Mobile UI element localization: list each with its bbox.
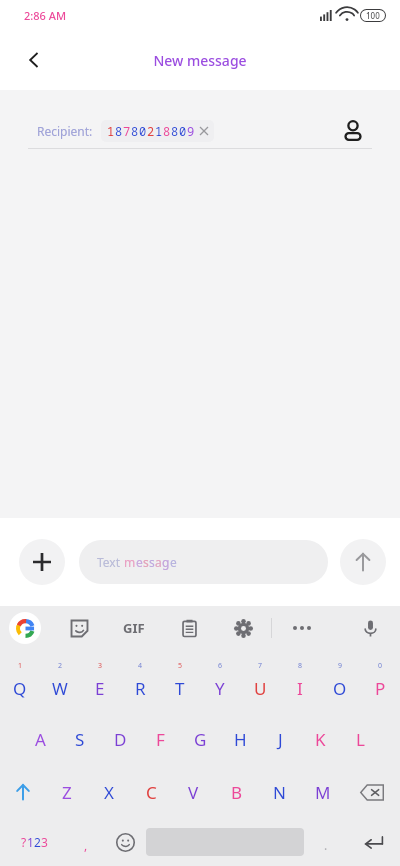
button[interactable]: Z xyxy=(46,766,88,818)
staticText: Q xyxy=(13,677,27,700)
button[interactable]: S xyxy=(60,712,100,766)
button[interactable]: , xyxy=(68,818,104,866)
staticText: F xyxy=(156,728,165,751)
button[interactable]: 1 xyxy=(101,120,214,142)
staticText: R xyxy=(135,677,146,700)
staticText: , xyxy=(84,837,88,853)
staticText: 0 xyxy=(139,123,147,139)
button[interactable]: 9 xyxy=(320,658,360,712)
button[interactable]: Stickers xyxy=(63,612,95,644)
staticText: I xyxy=(297,677,303,700)
staticText: 8 xyxy=(115,123,123,139)
button[interactable]: G xyxy=(180,712,220,766)
button[interactable]: Settings xyxy=(227,612,259,644)
button[interactable]: 0 xyxy=(360,658,400,712)
button[interactable]: L xyxy=(340,712,380,766)
staticText: 0 xyxy=(179,123,187,139)
staticText: s xyxy=(143,554,149,570)
staticText: 9 xyxy=(187,123,195,139)
button[interactable]: Back xyxy=(12,38,56,82)
button[interactable]: 1 xyxy=(0,658,40,712)
button[interactable]: Voice input xyxy=(354,612,386,644)
staticText: D xyxy=(114,728,127,751)
staticText: 6 xyxy=(218,661,223,671)
staticText: O xyxy=(333,677,347,700)
staticText: 8 xyxy=(298,661,303,671)
staticText: 5 xyxy=(178,661,183,671)
staticText: H xyxy=(234,728,247,751)
button[interactable]: Send xyxy=(340,539,386,585)
staticText: G xyxy=(194,728,207,751)
button[interactable]: J xyxy=(260,712,300,766)
button[interactable]: Shift xyxy=(0,766,46,818)
button[interactable]: V xyxy=(172,766,215,818)
staticText: a xyxy=(155,554,162,570)
staticText: 100 xyxy=(366,10,380,21)
button[interactable]: 3 xyxy=(80,658,120,712)
staticText: e xyxy=(136,554,143,570)
button[interactable]: H xyxy=(220,712,260,766)
button[interactable]: A xyxy=(20,712,60,766)
button[interactable]: 7 xyxy=(240,658,280,712)
staticText: 8 xyxy=(131,123,139,139)
button[interactable]: Choose contact xyxy=(334,112,372,150)
staticText: 3 xyxy=(41,834,48,850)
staticText: Y xyxy=(215,677,225,700)
button[interactable]: Text xyxy=(79,540,328,584)
staticText: 2:86 AM xyxy=(24,8,67,23)
button[interactable]: N xyxy=(258,766,301,818)
staticText: 7 xyxy=(258,661,263,671)
button[interactable]: 2 xyxy=(40,658,80,712)
button[interactable]: 5 xyxy=(160,658,200,712)
button[interactable]: M xyxy=(301,766,344,818)
staticText: U xyxy=(254,677,267,700)
staticText: 1 xyxy=(107,123,115,139)
staticText: . xyxy=(324,837,328,853)
button[interactable]: More options xyxy=(286,612,318,644)
staticText: s xyxy=(149,554,155,570)
staticText: e xyxy=(170,554,177,570)
staticText: 1 xyxy=(27,834,34,850)
button[interactable]: GIF xyxy=(117,611,151,645)
button[interactable]: B xyxy=(215,766,258,818)
staticText: Recipient: xyxy=(37,123,93,139)
staticText: 2 xyxy=(147,123,155,139)
button[interactable]: 6 xyxy=(200,658,240,712)
button[interactable]: F xyxy=(140,712,180,766)
staticText: Z xyxy=(62,781,72,804)
button[interactable]: 4 xyxy=(120,658,160,712)
staticText: 2 xyxy=(34,834,41,850)
button[interactable]: K xyxy=(300,712,340,766)
staticText: 9 xyxy=(338,661,343,671)
staticText: A xyxy=(35,728,46,751)
button[interactable]: Enter xyxy=(348,818,400,866)
staticText: J xyxy=(278,728,283,751)
staticText: ? xyxy=(21,834,27,850)
staticText: 7 xyxy=(123,123,131,139)
staticText: Text xyxy=(97,554,124,570)
button[interactable]: X xyxy=(88,766,130,818)
staticText: 1 xyxy=(155,123,163,139)
button[interactable]: ? xyxy=(0,818,68,866)
button[interactable]: Clipboard xyxy=(173,612,205,644)
button[interactable]: Add attachment xyxy=(19,539,65,585)
button[interactable]: Emoji xyxy=(104,818,146,866)
button[interactable]: Backspace xyxy=(344,766,400,818)
staticText: New message xyxy=(153,51,247,70)
staticText: C xyxy=(146,781,157,804)
button[interactable]: Google xyxy=(9,612,41,644)
button[interactable]: D xyxy=(100,712,140,766)
staticText: GIF xyxy=(123,619,145,637)
staticText: V xyxy=(188,781,199,804)
button[interactable]: C xyxy=(130,766,172,818)
staticText: 4 xyxy=(138,661,143,671)
staticText: 8 xyxy=(171,123,179,139)
staticText: B xyxy=(231,781,243,804)
staticText: 0 xyxy=(378,661,383,671)
staticText: S xyxy=(75,728,85,751)
staticText: N xyxy=(273,781,286,804)
button[interactable]: 8 xyxy=(280,658,320,712)
staticText: m xyxy=(124,554,136,570)
